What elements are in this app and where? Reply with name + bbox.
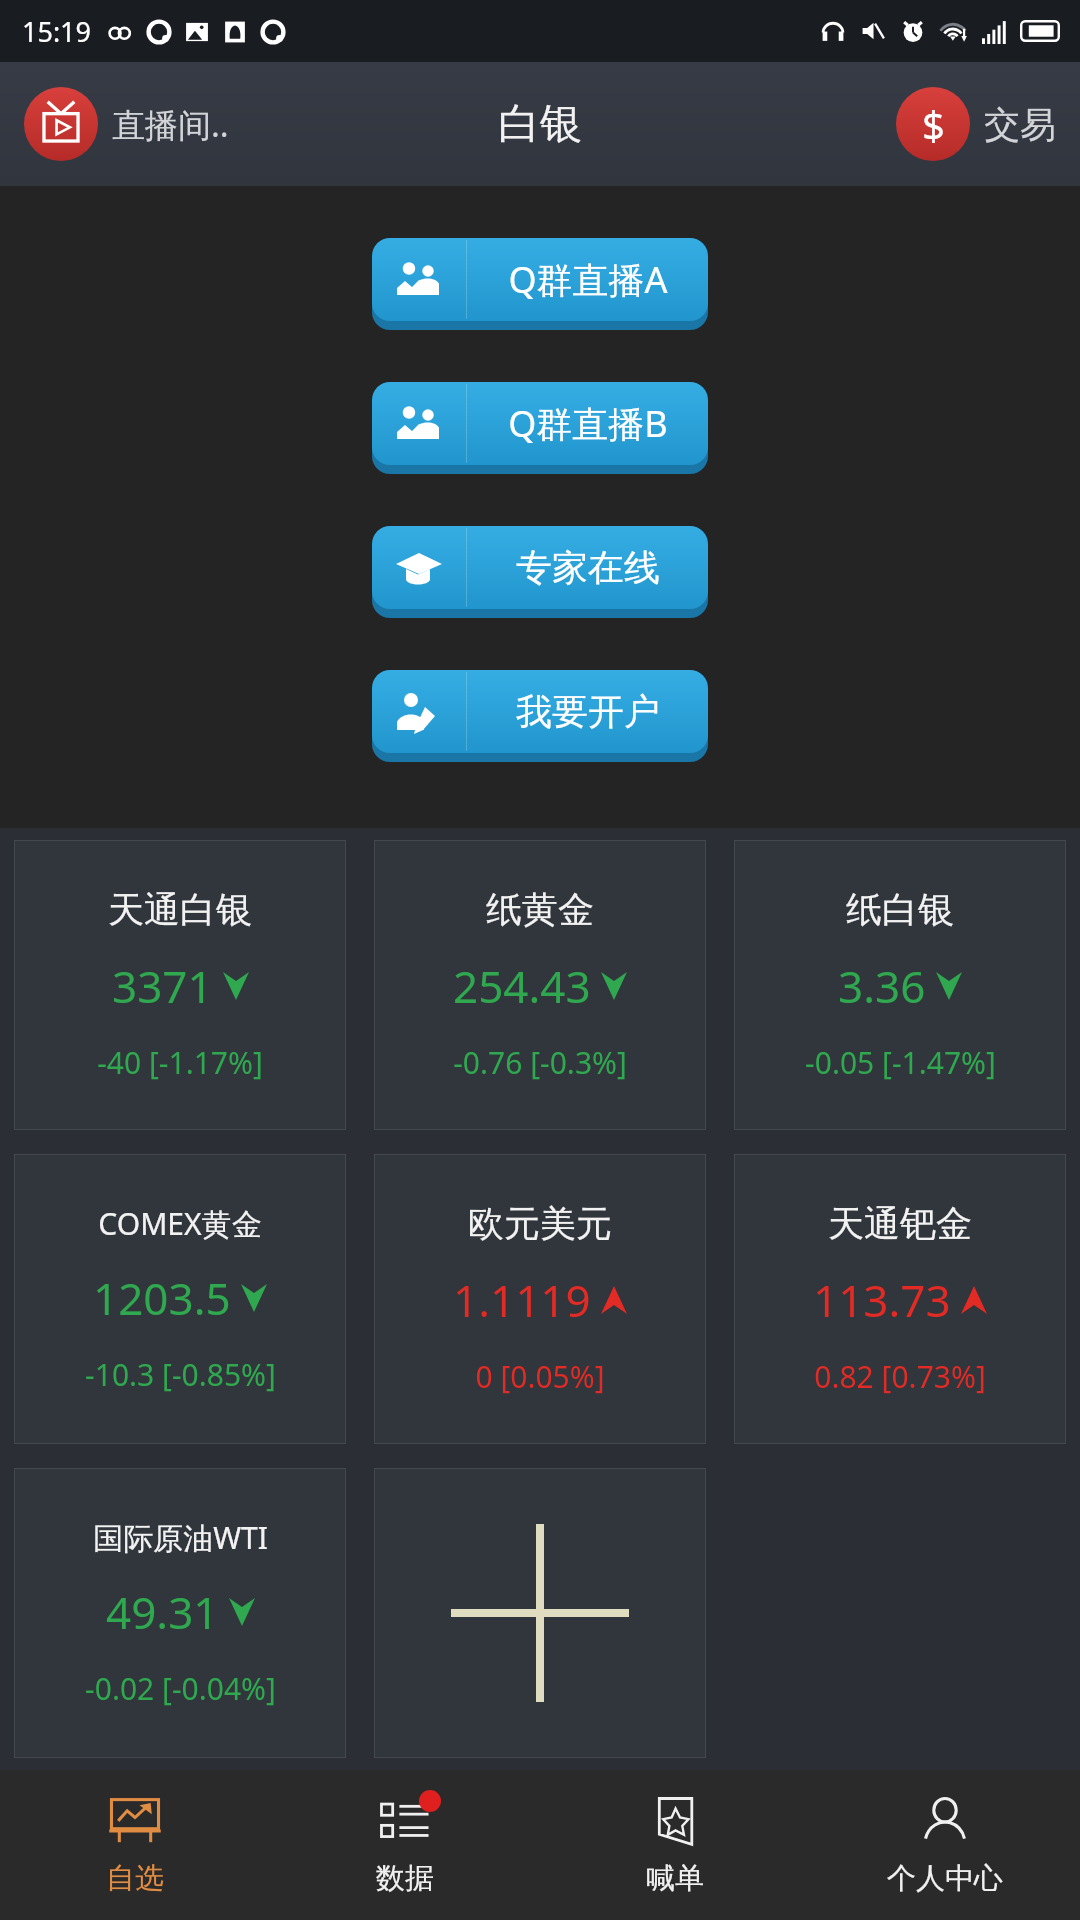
staticText: 自选 xyxy=(106,1860,164,1897)
button[interactable]: 纸黄金 xyxy=(374,840,706,1130)
staticText: 254.43 xyxy=(453,956,591,1016)
staticText: Q群直播A xyxy=(508,255,668,304)
button[interactable]: 专家在线 xyxy=(372,526,708,618)
staticText: 15:19 xyxy=(22,13,92,50)
button[interactable]: 个人中心 xyxy=(810,1770,1080,1920)
staticText: 1.1119 xyxy=(453,1270,591,1330)
button[interactable]: 国际原油WTI xyxy=(14,1468,346,1758)
button[interactable]: 欧元美元 xyxy=(374,1154,706,1444)
button[interactable]: COMEX黄金 xyxy=(14,1154,346,1444)
staticText: 欧元美元 xyxy=(468,1201,612,1246)
staticText: 天通钯金 xyxy=(828,1201,972,1246)
staticText: 纸白银 xyxy=(846,887,954,932)
button[interactable]: 我要开户 xyxy=(372,670,708,762)
button[interactable]: Q群直播B xyxy=(372,382,708,474)
button[interactable]: Add instrument xyxy=(374,1468,706,1758)
staticText: 白银 xyxy=(498,98,582,151)
staticText: 国际原油WTI xyxy=(93,1517,268,1558)
staticText: Q群直播B xyxy=(508,399,668,448)
staticText: -0.76 [-0.3%] xyxy=(453,1042,627,1083)
button[interactable]: 天通白银 xyxy=(14,840,346,1130)
staticText: 喊单 xyxy=(646,1860,704,1897)
staticText: 天通白银 xyxy=(108,887,252,932)
staticText: 1203.5 xyxy=(93,1268,231,1328)
staticText: 交易 xyxy=(984,102,1056,147)
button[interactable]: 天通钯金 xyxy=(734,1154,1066,1444)
staticText: -0.02 [-0.04%] xyxy=(85,1668,276,1709)
staticText: $ xyxy=(922,97,945,151)
staticText: 3371 xyxy=(112,956,213,1016)
button[interactable]: 喊单 xyxy=(540,1770,810,1920)
staticText: 49.31 xyxy=(106,1582,219,1642)
staticText: 我要开户 xyxy=(516,689,660,734)
staticText: 个人中心 xyxy=(887,1860,1003,1897)
staticText: 直播间.. xyxy=(112,102,229,147)
staticText: 专家在线 xyxy=(516,545,660,590)
button[interactable]: 纸白银 xyxy=(734,840,1066,1130)
staticText: 纸黄金 xyxy=(486,887,594,932)
staticText: 数据 xyxy=(376,1860,434,1897)
button[interactable]: 数据 xyxy=(270,1770,540,1920)
staticText: 0 [0.05%] xyxy=(475,1356,605,1397)
staticText: -40 [-1.17%] xyxy=(97,1042,263,1083)
staticText: 0.82 [0.73%] xyxy=(814,1356,986,1397)
button[interactable]: 直播间.. xyxy=(0,79,243,169)
staticText: -0.05 [-1.47%] xyxy=(805,1042,996,1083)
staticText: -10.3 [-0.85%] xyxy=(85,1354,276,1395)
button[interactable]: $ xyxy=(882,79,1080,169)
staticText: 3.36 xyxy=(838,956,926,1016)
button[interactable]: Q群直播A xyxy=(372,238,708,330)
staticText: 113.73 xyxy=(813,1270,951,1330)
staticText: COMEX黄金 xyxy=(98,1203,262,1244)
button[interactable]: 自选 xyxy=(0,1770,270,1920)
